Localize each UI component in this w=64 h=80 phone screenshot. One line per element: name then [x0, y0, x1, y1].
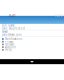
staticText: Notifications: [5, 37, 22, 41]
button[interactable]: Privacy: [0, 40, 64, 43]
staticText: Storage: [5, 43, 15, 46]
button[interactable]: Notifications: [0, 38, 64, 40]
staticText: jane@mail.com: [2, 33, 21, 36]
staticText: Help: [5, 48, 12, 51]
staticText: Account: [5, 45, 16, 49]
staticText: Full name: [2, 24, 15, 27]
staticText: Privacy: [5, 40, 13, 43]
staticText: Jane Appleseed: [2, 27, 25, 30]
button[interactable]: Storage: [0, 43, 64, 46]
staticText: 100%: [54, 14, 62, 18]
staticText: 9:41: [9, 14, 16, 18]
button[interactable]: Account: [0, 46, 64, 48]
staticText: Email: [2, 30, 8, 33]
button[interactable]: Help: [0, 48, 64, 51]
